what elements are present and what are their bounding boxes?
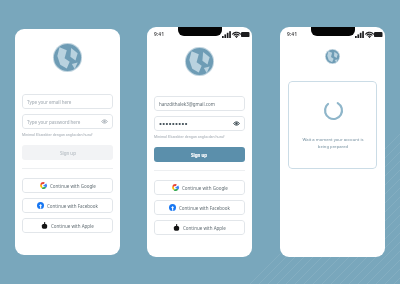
staticText: 9:41 [154,31,164,38]
staticText: Type your email here [27,99,108,105]
button[interactable]: Continue with Apple [154,220,245,235]
staticText: Sign up [60,150,76,156]
button[interactable]: Continue with Google [154,180,245,195]
button[interactable]: Sign up [22,145,113,160]
button[interactable]: Continue with Apple [22,218,113,233]
button[interactable]: Continue with Facebook [22,198,113,213]
staticText: Continue with Facebook [47,203,98,209]
staticText: Sign up [191,152,208,158]
staticText: Minimal 8 karakter dengan angka dan huru… [154,134,225,139]
button[interactable]: Continue with Google [22,178,113,193]
staticText: 9:41 [287,31,297,38]
staticText: Type your password here [27,119,101,125]
button[interactable]: Continue with Facebook [154,200,245,215]
button[interactable]: Type your email here [22,94,113,109]
staticText: Minimal 8 karakter dengan angka dan huru… [22,132,93,137]
staticText: Wait a moment your account is being prep… [302,137,364,149]
staticText: Continue with Google [182,185,228,191]
button[interactable]: hanzdithalek3@gmail.com [154,96,245,111]
staticText: Continue with Apple [183,225,226,231]
staticText: Continue with Facebook [179,205,230,211]
staticText: Continue with Apple [51,223,94,229]
other: Toggle password [233,120,240,127]
button[interactable]: Toggle password [154,116,245,131]
button[interactable]: Type your password here [22,114,113,129]
button[interactable]: Sign up [154,147,245,162]
other: Toggle password [101,118,108,125]
staticText: Continue with Google [50,183,96,189]
staticText: hanzdithalek3@gmail.com [159,101,240,107]
